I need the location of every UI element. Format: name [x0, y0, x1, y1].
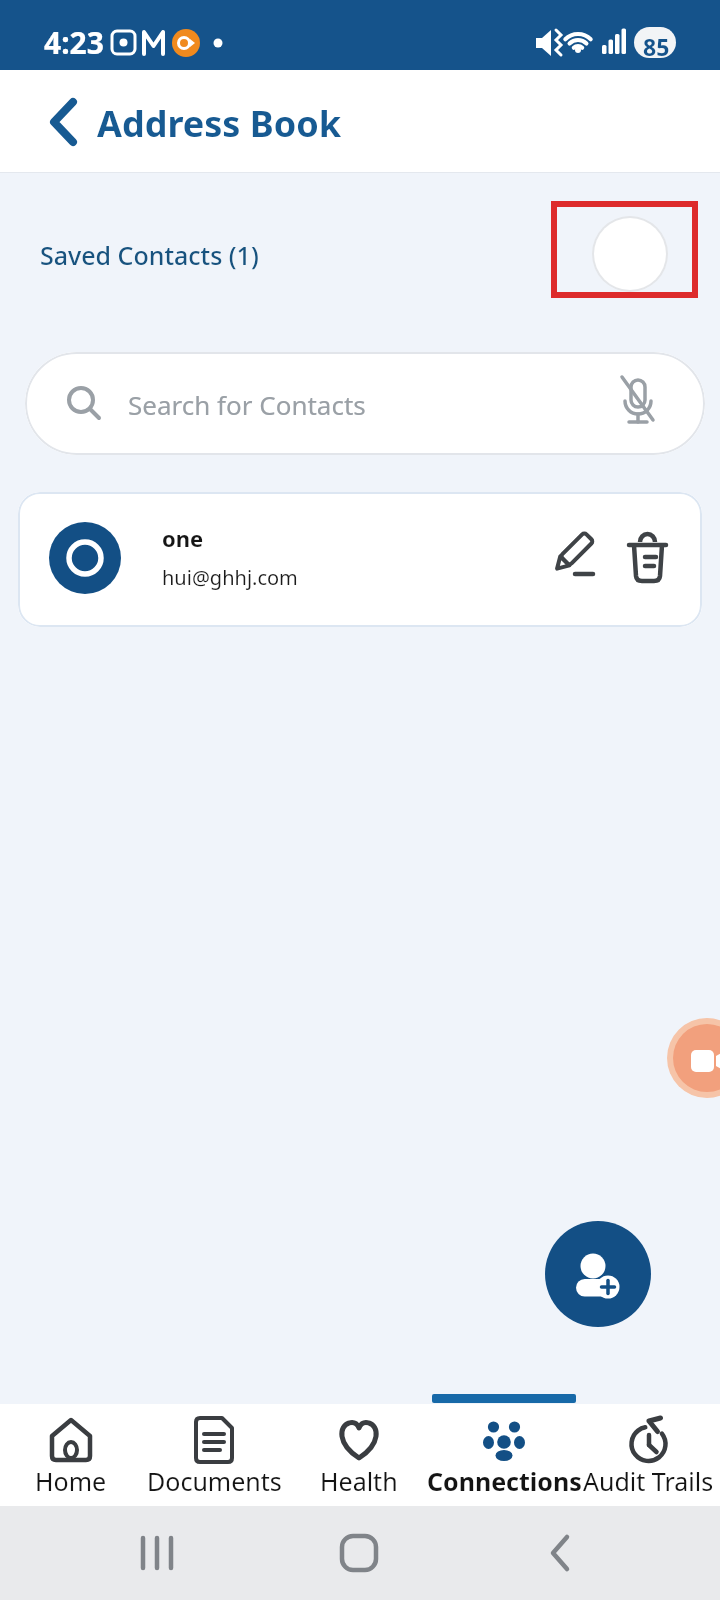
button[interactable]: Connections: [422, 1404, 586, 1506]
button[interactable]: Audit Trails: [577, 1404, 720, 1506]
staticText: Home: [35, 1464, 107, 1498]
button[interactable]: Home: [6, 1404, 136, 1506]
staticText: Connections: [427, 1464, 582, 1498]
button[interactable]: [612, 522, 684, 594]
button[interactable]: Search for Contacts: [25, 352, 705, 455]
staticText: hui@ghhj.com: [162, 564, 298, 591]
staticText: 4:23: [44, 22, 104, 63]
button[interactable]: [667, 1018, 720, 1098]
button[interactable]: Documents: [139, 1404, 289, 1506]
staticText: one: [162, 523, 204, 553]
button[interactable]: [117, 1513, 197, 1593]
staticText: Search for Contacts: [128, 387, 366, 422]
staticText: Health: [320, 1464, 398, 1498]
button[interactable]: [554, 204, 695, 295]
button[interactable]: [40, 98, 88, 146]
button[interactable]: one: [18, 492, 702, 627]
button[interactable]: [538, 522, 610, 594]
staticText: Audit Trails: [583, 1464, 714, 1498]
staticText: Address Book: [97, 99, 342, 148]
button[interactable]: [319, 1513, 399, 1593]
button[interactable]: [520, 1513, 600, 1593]
button[interactable]: [545, 1221, 651, 1327]
staticText: Saved Contacts (1): [40, 238, 259, 272]
staticText: 85: [643, 31, 670, 62]
staticText: Documents: [147, 1464, 282, 1498]
button[interactable]: Health: [299, 1404, 419, 1506]
